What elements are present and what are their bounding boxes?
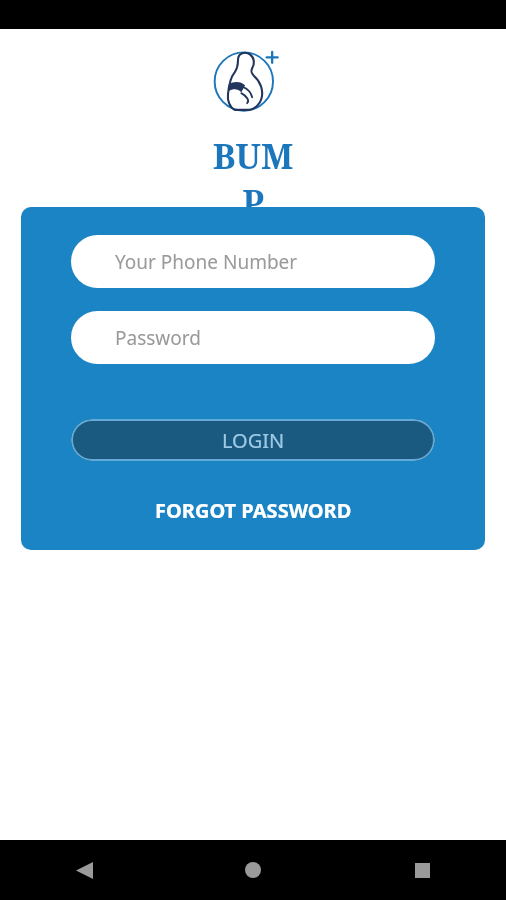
staticText: FORGOT PASSWORD [155, 497, 352, 524]
button[interactable]: LOGIN [71, 419, 435, 461]
staticText: LOGIN [222, 427, 285, 454]
staticText: Your Phone Number [115, 249, 298, 275]
button[interactable]: Home [229, 846, 277, 894]
button[interactable]: FORGOT PASSWORD [71, 497, 435, 524]
button[interactable]: Password [71, 311, 435, 364]
button[interactable]: Back [60, 846, 108, 894]
staticText: Password [115, 325, 201, 351]
button[interactable]: Your Phone Number [71, 235, 435, 288]
staticText: BUMP [203, 133, 303, 225]
button[interactable]: Recent apps [398, 846, 446, 894]
